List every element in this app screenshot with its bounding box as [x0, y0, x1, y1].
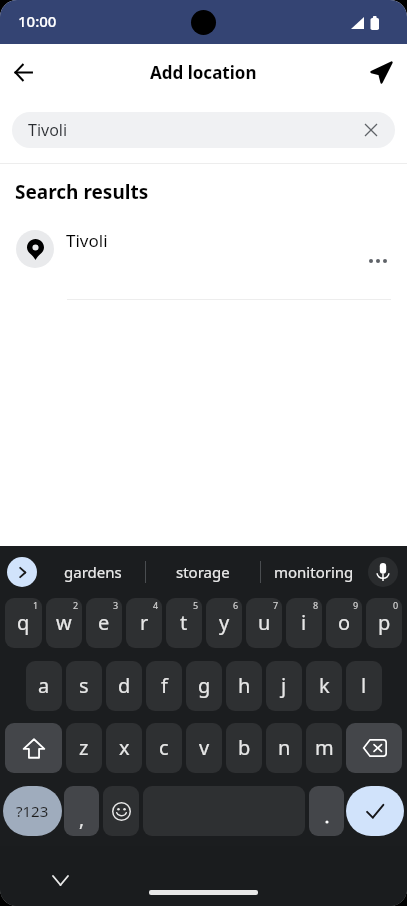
staticText: u	[258, 609, 271, 636]
button[interactable]: Comma	[64, 786, 99, 836]
button[interactable]: Tivoli	[0, 205, 407, 299]
staticText: d	[118, 672, 131, 699]
button[interactable]: e	[86, 598, 122, 648]
staticText: t	[180, 609, 188, 636]
button[interactable]: j	[266, 661, 302, 711]
button[interactable]: More suggestions	[7, 557, 37, 587]
button[interactable]: p	[366, 598, 402, 648]
button[interactable]: Backspace	[346, 723, 402, 773]
button[interactable]: Tivoli	[12, 112, 395, 148]
staticText: 0	[393, 599, 399, 611]
staticText: p	[378, 609, 391, 636]
staticText: 8	[313, 599, 319, 611]
button[interactable]: r	[126, 598, 162, 648]
staticText: g	[198, 672, 211, 699]
button[interactable]: q	[5, 598, 42, 648]
staticText: z	[79, 734, 89, 761]
staticText: v	[199, 734, 210, 761]
staticText: 2	[73, 599, 79, 611]
staticText: Search results	[15, 179, 149, 205]
staticText: y	[219, 609, 230, 636]
staticText: i	[301, 609, 307, 636]
staticText: c	[159, 734, 169, 761]
staticText: l	[361, 672, 367, 699]
staticText: 9	[353, 599, 359, 611]
button[interactable]: monitoring	[261, 546, 367, 598]
staticText: h	[238, 672, 251, 699]
button[interactable]: f	[146, 661, 182, 711]
button[interactable]: Clear	[357, 116, 385, 144]
button[interactable]: g	[186, 661, 222, 711]
staticText: Tivoli	[28, 119, 68, 141]
staticText: ,	[79, 806, 85, 832]
staticText: ?123	[16, 801, 49, 821]
button[interactable]: Back	[3, 52, 43, 92]
staticText: j	[281, 672, 287, 699]
staticText: 3	[113, 599, 119, 611]
button[interactable]: gardens	[41, 546, 145, 598]
button[interactable]: u	[246, 598, 282, 648]
button[interactable]: n	[266, 723, 302, 773]
staticText: x	[119, 734, 130, 761]
staticText: 6	[233, 599, 239, 611]
staticText: n	[278, 734, 291, 761]
staticText: 4	[153, 599, 159, 611]
button[interactable]: Period	[309, 786, 344, 836]
button[interactable]: d	[106, 661, 142, 711]
staticText: e	[98, 609, 110, 636]
button[interactable]: Enter	[346, 786, 404, 836]
button[interactable]: l	[346, 661, 382, 711]
staticText: r	[140, 609, 149, 636]
button[interactable]: storage	[146, 546, 260, 598]
staticText: gardens	[64, 562, 122, 582]
button[interactable]: ?123	[3, 786, 62, 836]
staticText: q	[17, 609, 30, 636]
button[interactable]: Shift	[5, 723, 62, 773]
staticText: 10:00	[18, 11, 57, 31]
button[interactable]: Emoji	[103, 786, 139, 836]
button[interactable]: b	[226, 723, 262, 773]
button[interactable]: Hide keyboard	[46, 866, 74, 894]
button[interactable]: m	[306, 723, 342, 773]
staticText: m	[315, 734, 334, 761]
button[interactable]: s	[66, 661, 102, 711]
staticText: o	[338, 609, 351, 636]
button[interactable]: c	[146, 723, 182, 773]
staticText: Add location	[150, 61, 257, 84]
staticText: Tivoli	[66, 229, 108, 252]
button[interactable]: Voice input	[368, 557, 398, 587]
button[interactable]: v	[186, 723, 222, 773]
staticText: 1	[33, 599, 39, 611]
staticText: a	[38, 672, 50, 699]
button[interactable]: i	[286, 598, 322, 648]
button[interactable]: x	[106, 723, 142, 773]
button[interactable]: k	[306, 661, 342, 711]
staticText: b	[238, 734, 251, 761]
staticText: s	[79, 672, 89, 699]
button[interactable]: h	[226, 661, 262, 711]
staticText: storage	[176, 562, 230, 582]
staticText: f	[161, 672, 168, 699]
button[interactable]: y	[206, 598, 242, 648]
staticText: 7	[273, 599, 279, 611]
button[interactable]: w	[46, 598, 82, 648]
button[interactable]: Navigate	[361, 52, 401, 92]
button[interactable]: z	[66, 723, 102, 773]
button[interactable]: More options	[362, 245, 394, 277]
staticText: monitoring	[274, 562, 354, 582]
staticText: k	[319, 672, 330, 699]
button[interactable]: a	[26, 661, 62, 711]
button[interactable]: o	[326, 598, 362, 648]
staticText: w	[56, 609, 72, 636]
button[interactable]: t	[166, 598, 202, 648]
staticText: 5	[193, 599, 199, 611]
